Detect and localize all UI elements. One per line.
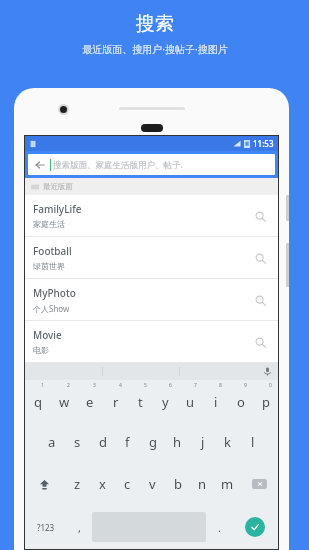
staticText: 3: [93, 382, 96, 389]
staticText: k: [224, 433, 231, 451]
staticText: u: [186, 393, 195, 411]
staticText: c: [124, 475, 131, 493]
button[interactable]: k: [215, 421, 240, 463]
button[interactable]: d: [90, 421, 115, 463]
button[interactable]: Shift: [25, 463, 64, 505]
staticText: 0: [269, 382, 272, 389]
button[interactable]: .: [206, 505, 232, 549]
button[interactable]: m: [215, 463, 240, 505]
staticText: t: [138, 393, 143, 411]
staticText: 8: [219, 382, 222, 389]
staticText: o: [237, 393, 245, 411]
button[interactable]: 0: [253, 380, 278, 421]
button[interactable]: 3: [77, 380, 103, 421]
button[interactable]: f: [115, 421, 140, 463]
button[interactable]: 4: [103, 380, 128, 421]
staticText: b: [174, 475, 182, 493]
staticText: i: [214, 393, 218, 411]
button[interactable]: Movie: [25, 321, 278, 362]
staticText: .: [218, 520, 221, 535]
staticText: j: [201, 433, 205, 451]
staticText: 6: [169, 382, 172, 389]
button[interactable]: 2: [51, 380, 77, 421]
staticText: w: [59, 393, 70, 411]
staticText: e: [86, 393, 94, 411]
staticText: p: [262, 393, 270, 411]
button[interactable]: s: [65, 421, 90, 463]
button[interactable]: h: [165, 421, 190, 463]
staticText: 搜索: [136, 12, 174, 36]
button[interactable]: 5: [128, 380, 153, 421]
staticText: g: [149, 433, 157, 451]
staticText: d: [99, 433, 107, 451]
staticText: FamilyLife: [33, 202, 82, 216]
button[interactable]: b: [165, 463, 190, 505]
staticText: z: [74, 475, 81, 493]
staticText: q: [34, 393, 42, 411]
other: Back: [33, 158, 47, 172]
button[interactable]: j: [190, 421, 215, 463]
staticText: ?123: [37, 522, 55, 533]
staticText: Movie: [33, 328, 62, 342]
button[interactable]: 8: [203, 380, 228, 421]
button[interactable]: 6: [153, 380, 178, 421]
staticText: h: [173, 433, 182, 451]
other: Search FamilyLife: [252, 208, 268, 224]
staticText: MyPhoto: [33, 286, 76, 300]
button[interactable]: g: [140, 421, 165, 463]
button[interactable]: Voice input: [256, 363, 278, 380]
staticText: 家庭生活: [33, 219, 65, 229]
staticText: 电影: [33, 345, 49, 355]
button[interactable]: n: [190, 463, 215, 505]
staticText: ,: [78, 520, 81, 535]
staticText: 最近版面、搜用户·搜帖子·搜图片: [82, 42, 228, 56]
staticText: 7: [194, 382, 197, 389]
button[interactable]: ,: [66, 505, 92, 549]
button[interactable]: a: [39, 421, 65, 463]
other: Search Movie: [252, 334, 268, 350]
button[interactable]: ?123: [25, 505, 66, 549]
staticText: 2: [67, 382, 70, 389]
staticText: s: [74, 433, 81, 451]
staticText: a: [48, 433, 56, 451]
button[interactable]: 9: [228, 380, 253, 421]
staticText: m: [221, 475, 234, 493]
staticText: 4: [119, 382, 122, 389]
button[interactable]: MyPhoto: [25, 279, 278, 320]
staticText: v: [149, 475, 156, 493]
button[interactable]: x: [90, 463, 115, 505]
staticText: y: [162, 393, 169, 411]
other: Search MyPhoto: [252, 292, 268, 308]
staticText: r: [113, 393, 119, 411]
button[interactable]: Back: [28, 154, 275, 175]
other: Search Football: [252, 250, 268, 266]
staticText: Football: [33, 244, 72, 258]
button[interactable]: l: [240, 421, 265, 463]
staticText: x: [99, 475, 106, 493]
button[interactable]: v: [140, 463, 165, 505]
button[interactable]: 1: [25, 380, 51, 421]
staticText: 5: [144, 382, 147, 389]
staticText: 1: [41, 382, 44, 389]
button[interactable]: Football: [25, 237, 278, 278]
staticText: f: [125, 433, 130, 451]
staticText: 11:53: [253, 138, 274, 149]
button[interactable]: c: [115, 463, 140, 505]
staticText: l: [251, 433, 255, 451]
staticText: n: [198, 475, 207, 493]
staticText: 搜索版面、家庭生活版用户、帖子.: [53, 159, 183, 171]
button[interactable]: 7: [178, 380, 203, 421]
staticText: 9: [244, 382, 247, 389]
button[interactable]: FamilyLife: [25, 195, 278, 236]
staticText: 最近版面: [43, 182, 73, 191]
staticText: 个人Show: [33, 303, 70, 314]
button[interactable]: Backspace: [240, 463, 278, 505]
button[interactable]: z: [64, 463, 90, 505]
button[interactable]: Search: [232, 505, 278, 549]
staticText: 绿茵世界: [33, 261, 65, 271]
